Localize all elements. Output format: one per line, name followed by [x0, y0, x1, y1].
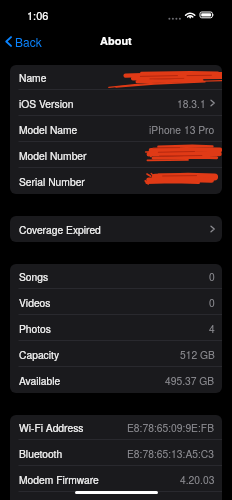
button[interactable]: Photos	[10, 315, 222, 341]
staticText: 18.3.1	[177, 96, 206, 111]
button[interactable]: Coverage Expired	[10, 216, 222, 242]
button[interactable]: Wi-Fi Address	[10, 415, 222, 440]
button[interactable]: Songs	[10, 264, 222, 289]
button[interactable]: SEID	[10, 492, 222, 500]
button[interactable]: Model Number	[10, 142, 222, 168]
button[interactable]: Back	[5, 30, 42, 53]
button[interactable]: Capacity	[10, 341, 222, 367]
staticText: Songs	[19, 269, 49, 284]
button[interactable]: Model Name	[10, 116, 222, 142]
button[interactable]: Modem Firmware	[10, 466, 222, 492]
staticText: Name	[19, 70, 47, 85]
staticText: 0	[209, 269, 215, 284]
staticText: Available	[19, 373, 61, 388]
staticText: Modem Firmware	[19, 472, 99, 487]
staticText: About	[100, 33, 132, 49]
staticText: 4	[209, 321, 215, 336]
staticText: 495.37 GB	[165, 373, 215, 388]
button[interactable]: Available	[10, 367, 222, 393]
staticText: 1:06	[27, 7, 49, 23]
staticText: iPhone 13 Pro	[149, 122, 215, 137]
staticText: E8:78:65:09:9E:FB	[127, 420, 215, 435]
staticText: E8:78:65:13:A5:C3	[127, 446, 215, 461]
staticText: iOS Version	[19, 96, 74, 111]
staticText: Videos	[19, 295, 51, 310]
staticText: Back	[15, 33, 42, 50]
staticText: Coverage Expired	[19, 222, 101, 237]
staticText: Model Number	[19, 148, 87, 163]
staticText: 512 GB	[180, 347, 215, 362]
staticText: Serial Number	[19, 174, 85, 189]
button[interactable]: iOS Version	[10, 90, 222, 116]
button[interactable]: Name	[10, 65, 222, 90]
staticText: Bluetooth	[19, 446, 63, 461]
staticText: Wi-Fi Address	[19, 420, 84, 435]
staticText: 4.20.03	[180, 472, 215, 487]
button[interactable]: Bluetooth	[10, 440, 222, 466]
button[interactable]: Serial Number	[10, 168, 222, 194]
staticText: Capacity	[19, 347, 60, 362]
staticText: 0	[209, 295, 215, 310]
staticText: Model Name	[19, 122, 78, 137]
button[interactable]: Videos	[10, 289, 222, 315]
staticText: Photos	[19, 321, 51, 336]
